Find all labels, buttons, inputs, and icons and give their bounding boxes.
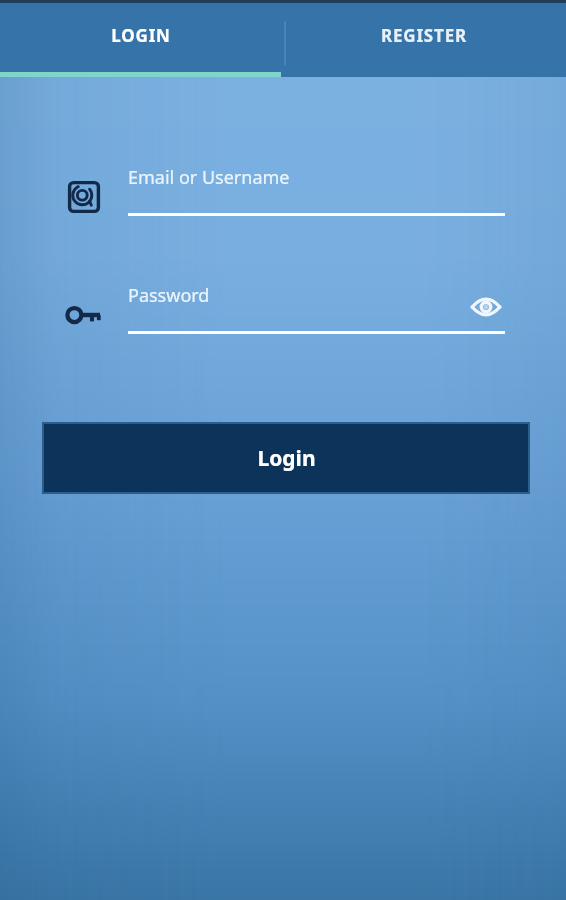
staticText: Login xyxy=(257,444,316,473)
button[interactable]: REGISTER xyxy=(281,3,566,77)
button[interactable]: Login xyxy=(44,424,528,492)
staticText: REGISTER xyxy=(381,24,467,47)
other: Password xyxy=(62,293,106,337)
button[interactable]: Show password xyxy=(462,283,510,331)
staticText: Email or Username xyxy=(128,165,290,190)
other: Email xyxy=(62,175,106,219)
button[interactable]: LOGIN xyxy=(0,3,281,77)
staticText: Password xyxy=(128,283,210,308)
staticText: LOGIN xyxy=(111,24,171,47)
